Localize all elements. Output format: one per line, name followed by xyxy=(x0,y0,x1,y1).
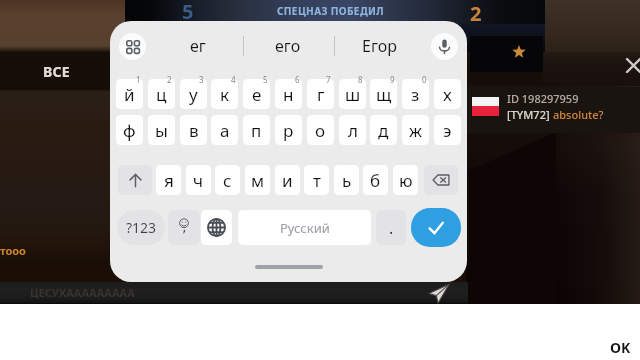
button[interactable]: л xyxy=(339,115,366,145)
button[interactable]: Send xyxy=(428,282,450,304)
staticText: 0 xyxy=(422,74,427,85)
staticText: з xyxy=(411,83,420,106)
button[interactable]: ы xyxy=(148,115,175,145)
staticText: д xyxy=(378,119,389,142)
staticText: OK xyxy=(610,338,631,357)
button[interactable]: о xyxy=(307,115,334,145)
staticText: т xyxy=(313,169,321,192)
staticText: его xyxy=(275,35,301,57)
staticText: п xyxy=(251,119,262,142)
staticText: р xyxy=(283,119,294,142)
staticText: 8 xyxy=(358,74,363,85)
staticText: 5 xyxy=(182,0,194,25)
staticText: ВСЕ xyxy=(43,62,70,81)
button[interactable]: й xyxy=(116,79,143,109)
staticText: я xyxy=(164,169,174,192)
button[interactable]: OK xyxy=(602,336,638,358)
staticText: б xyxy=(370,169,381,192)
staticText: х xyxy=(443,83,452,106)
button[interactable]: Close xyxy=(625,57,640,74)
staticText: Егор xyxy=(362,35,397,57)
staticText: тооо xyxy=(0,243,26,258)
staticText: СПЕЦНАЗ ПОБЕДИЛ xyxy=(277,4,385,18)
staticText: й xyxy=(124,83,135,106)
staticText: . xyxy=(389,217,394,239)
staticText: ю xyxy=(399,169,413,192)
button[interactable]: ф xyxy=(116,115,143,145)
button[interactable]: Change language xyxy=(201,210,232,245)
button[interactable]: х xyxy=(434,79,461,109)
staticText: э xyxy=(443,119,452,142)
button[interactable]: ь xyxy=(334,165,359,195)
button[interactable]: э xyxy=(434,115,461,145)
staticText: о xyxy=(315,119,326,142)
staticText: м xyxy=(251,169,265,192)
button[interactable]: г xyxy=(307,79,334,109)
staticText: к xyxy=(220,83,230,106)
staticText: ж xyxy=(409,119,422,142)
button[interactable]: ж xyxy=(402,115,429,145)
staticText: а xyxy=(220,119,230,142)
button[interactable]: Егор xyxy=(334,28,424,64)
staticText: ш xyxy=(345,83,361,106)
button[interactable]: его xyxy=(243,28,333,64)
staticText: с xyxy=(223,169,232,192)
staticText: absolute? xyxy=(553,107,604,122)
staticText: н xyxy=(283,83,294,106)
staticText: 5 xyxy=(263,74,268,85)
button[interactable]: Русский xyxy=(238,210,371,245)
staticText: ч xyxy=(193,169,204,192)
staticText: 1 xyxy=(136,74,141,85)
staticText: л xyxy=(348,119,358,142)
button[interactable]: н xyxy=(275,79,302,109)
staticText: ц xyxy=(156,83,167,106)
staticText: в xyxy=(189,119,199,142)
staticText: щ xyxy=(376,83,392,106)
button[interactable]: е xyxy=(243,79,270,109)
button[interactable]: у xyxy=(180,79,207,109)
staticText: ID 198297959 xyxy=(507,91,579,106)
button[interactable]: Enter xyxy=(411,208,461,247)
staticText: 9 xyxy=(390,74,395,85)
staticText: ?123 xyxy=(126,218,157,237)
staticText: е xyxy=(252,83,262,106)
button[interactable]: Backspace xyxy=(424,165,458,195)
button[interactable]: б xyxy=(363,165,388,195)
staticText: и xyxy=(282,169,293,192)
button[interactable]: ш xyxy=(339,79,366,109)
button[interactable]: и xyxy=(275,165,300,195)
button[interactable]: в xyxy=(180,115,207,145)
staticText: [TYM72] xyxy=(507,107,553,122)
button[interactable]: Shift xyxy=(118,165,152,195)
button[interactable]: ю xyxy=(393,165,418,195)
button[interactable]: Keyboard apps xyxy=(119,33,146,60)
staticText: 4 xyxy=(231,74,236,85)
button[interactable]: . xyxy=(376,210,406,245)
staticText: ег xyxy=(190,35,206,57)
button[interactable]: я xyxy=(156,165,181,195)
button[interactable]: ?123 xyxy=(117,210,165,245)
staticText: ЦЕСУХААААААААА xyxy=(30,285,135,300)
button[interactable]: с xyxy=(215,165,240,195)
staticText: 7 xyxy=(326,74,331,85)
staticText: 2 xyxy=(167,74,172,85)
button[interactable]: д xyxy=(370,115,397,145)
button[interactable]: з xyxy=(402,79,429,109)
button[interactable]: ц xyxy=(148,79,175,109)
button[interactable]: ч xyxy=(186,165,211,195)
button[interactable]: а xyxy=(211,115,238,145)
button[interactable]: м xyxy=(245,165,270,195)
button[interactable]: к xyxy=(211,79,238,109)
button[interactable]: р xyxy=(275,115,302,145)
staticText: ф xyxy=(123,119,136,142)
button[interactable]: ег xyxy=(153,28,243,64)
button[interactable]: п xyxy=(243,115,270,145)
button[interactable]: Voice input xyxy=(431,33,458,60)
button[interactable]: т xyxy=(304,165,329,195)
staticText: ы xyxy=(155,119,168,142)
staticText: Русский xyxy=(280,219,330,237)
button[interactable]: Emoji xyxy=(168,210,200,245)
staticText: г xyxy=(317,83,325,106)
button[interactable]: щ xyxy=(370,79,397,109)
button[interactable]: ВСЕ xyxy=(16,56,96,86)
